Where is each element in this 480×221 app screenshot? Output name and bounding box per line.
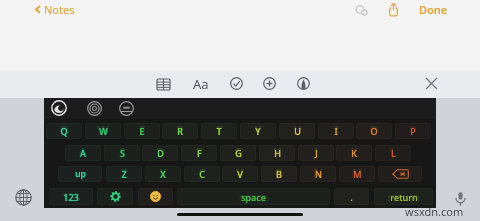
- staticText: return: [387, 190, 420, 204]
- button[interactable]: [138, 188, 173, 205]
- staticText: W: [97, 123, 109, 139]
- button[interactable]: F: [181, 145, 217, 161]
- button[interactable]: C: [184, 166, 220, 182]
- button[interactable]: Add Attachment: [259, 73, 280, 94]
- button[interactable]: T: [201, 123, 237, 139]
- button[interactable]: X: [145, 166, 181, 182]
- staticText: I: [334, 123, 339, 139]
- staticText: P: [409, 123, 417, 139]
- staticText: S: [120, 147, 125, 159]
- button[interactable]: E: [124, 123, 160, 139]
- staticText: C: [199, 168, 205, 180]
- button[interactable]: Share: [384, 0, 403, 19]
- staticText: Y: [255, 125, 261, 137]
- staticText: D: [156, 145, 165, 161]
- button[interactable]: Dictate: [449, 187, 471, 209]
- staticText: H: [273, 145, 282, 161]
- staticText: R: [176, 123, 184, 139]
- button[interactable]: return: [374, 188, 433, 205]
- button[interactable]: L: [375, 145, 411, 161]
- staticText: E: [139, 125, 145, 137]
- staticText: space: [239, 190, 268, 204]
- button[interactable]: [378, 166, 422, 182]
- button[interactable]: Checklist: [226, 73, 247, 94]
- staticText: T: [216, 125, 222, 137]
- staticText: N: [315, 168, 322, 180]
- staticText: J: [315, 147, 318, 159]
- button[interactable]: Q: [46, 123, 82, 139]
- staticText: F: [197, 147, 202, 159]
- staticText: return: [390, 191, 418, 203]
- staticText: O: [370, 125, 378, 137]
- staticText: Z: [121, 168, 127, 180]
- button[interactable]: 123: [49, 188, 93, 205]
- staticText: .: [350, 189, 354, 205]
- button[interactable]: R: [162, 123, 198, 139]
- button[interactable]: A: [65, 145, 101, 161]
- staticText: R: [177, 125, 183, 137]
- button[interactable]: U: [279, 123, 315, 139]
- staticText: Done: [419, 2, 448, 17]
- button[interactable]: Keyboard Menu: [50, 99, 68, 117]
- staticText: H: [274, 147, 281, 159]
- staticText: 123: [63, 191, 79, 203]
- button[interactable]: space: [177, 188, 330, 205]
- staticText: M: [353, 168, 362, 180]
- button[interactable]: H: [259, 145, 295, 161]
- button[interactable]: Markup: [293, 73, 314, 94]
- staticText: K: [351, 147, 357, 159]
- staticText: I: [334, 125, 338, 137]
- button[interactable]: M: [339, 166, 375, 182]
- button[interactable]: W: [85, 123, 121, 139]
- staticText: A: [80, 147, 86, 159]
- staticText: U: [294, 125, 301, 137]
- staticText: space: [241, 191, 266, 203]
- staticText: Notes: [44, 2, 75, 17]
- staticText: .: [350, 191, 353, 203]
- button[interactable]: K: [336, 145, 372, 161]
- button[interactable]: G: [220, 145, 256, 161]
- button[interactable]: Close: [421, 73, 442, 94]
- button[interactable]: D: [142, 145, 178, 161]
- staticText: Z: [121, 166, 128, 182]
- staticText: X: [160, 168, 166, 180]
- button[interactable]: N: [300, 166, 336, 182]
- staticText: P: [410, 125, 416, 137]
- staticText: W: [99, 125, 108, 137]
- button[interactable]: B: [261, 166, 297, 182]
- staticText: L: [390, 145, 397, 161]
- staticText: K: [350, 145, 358, 161]
- button[interactable]: Table: [152, 73, 174, 95]
- staticText: O: [369, 123, 379, 139]
- staticText: F: [196, 145, 203, 161]
- button[interactable]: Theme: [85, 99, 103, 117]
- button[interactable]: Done: [415, 0, 452, 18]
- button[interactable]: [97, 188, 133, 205]
- button[interactable]: O: [356, 123, 392, 139]
- staticText: B: [275, 166, 283, 182]
- button[interactable]: S: [104, 145, 140, 161]
- staticText: M: [352, 166, 363, 182]
- button[interactable]: I: [318, 123, 354, 139]
- button[interactable]: up: [58, 166, 102, 182]
- staticText: up: [75, 168, 86, 180]
- button[interactable]: Z: [106, 166, 142, 182]
- button[interactable]: Notes: [33, 1, 77, 18]
- button[interactable]: .: [334, 188, 369, 205]
- button[interactable]: Aa: [190, 74, 212, 94]
- staticText: X: [159, 166, 167, 182]
- staticText: wsxdn.com: [405, 204, 464, 219]
- staticText: G: [234, 145, 243, 161]
- button[interactable]: Change Keyboard: [12, 186, 35, 209]
- staticText: B: [276, 168, 282, 180]
- button[interactable]: Y: [240, 123, 276, 139]
- staticText: up: [74, 168, 87, 181]
- button[interactable]: V: [222, 166, 258, 182]
- button[interactable]: Add People: [351, 0, 372, 21]
- button[interactable]: J: [298, 145, 334, 161]
- staticText: S: [119, 145, 126, 161]
- staticText: Q: [60, 125, 68, 137]
- staticText: N: [313, 166, 323, 182]
- button[interactable]: P: [395, 123, 431, 139]
- button[interactable]: Shortcut: [117, 99, 135, 117]
